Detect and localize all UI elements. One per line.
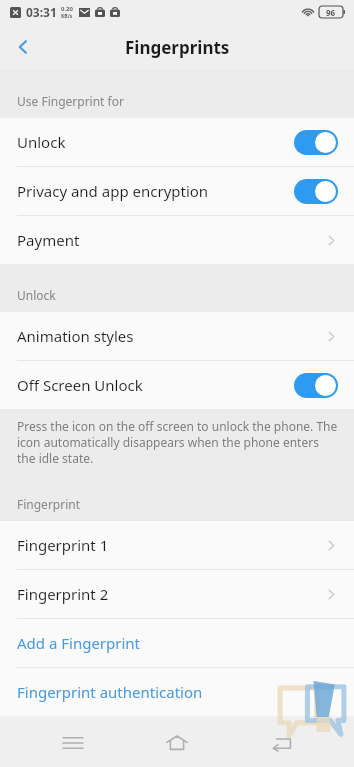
staticText: Fingerprints <box>125 36 230 59</box>
staticText: KB/s <box>61 13 73 20</box>
button[interactable]: Recent apps <box>41 719 105 767</box>
staticText: 03:31 <box>26 4 57 20</box>
button[interactable]: Payment <box>0 216 354 264</box>
button[interactable]: Off Screen Unlock <box>0 361 354 409</box>
staticText: Fingerprint authentication <box>17 682 203 702</box>
button[interactable]: Home <box>145 719 209 767</box>
button[interactable]: Fingerprint authentication <box>0 668 354 716</box>
staticText: 96 <box>326 7 336 18</box>
staticText: Unlock <box>17 132 294 152</box>
staticText: Animation styles <box>17 326 325 346</box>
staticText: Privacy and app encryption <box>17 181 294 201</box>
button[interactable]: Animation styles <box>0 312 354 360</box>
staticText: 0.20 <box>61 5 73 13</box>
button[interactable]: Toggle <box>294 179 338 204</box>
staticText: Fingerprint 1 <box>17 535 325 555</box>
button[interactable]: Add a Fingerprint <box>0 619 354 667</box>
button[interactable]: Toggle <box>294 373 338 398</box>
staticText: Unlock <box>17 287 56 303</box>
button[interactable]: Privacy and app encryption <box>0 167 354 215</box>
button[interactable]: Back <box>250 719 314 767</box>
staticText: Payment <box>17 230 325 250</box>
button[interactable]: Fingerprint 1 <box>0 521 354 569</box>
button[interactable]: Fingerprint 2 <box>0 570 354 618</box>
staticText: Fingerprint <box>17 496 81 512</box>
staticText: Fingerprint 2 <box>17 584 325 604</box>
button[interactable]: Unlock <box>0 118 354 166</box>
staticText: Off Screen Unlock <box>17 375 294 395</box>
staticText: Add a Fingerprint <box>17 633 141 653</box>
staticText: Use Fingerprint for <box>17 93 124 109</box>
staticText: Press the icon on the off screen to unlo… <box>17 418 338 466</box>
button[interactable]: Back <box>0 24 46 70</box>
button[interactable]: Toggle <box>294 130 338 155</box>
